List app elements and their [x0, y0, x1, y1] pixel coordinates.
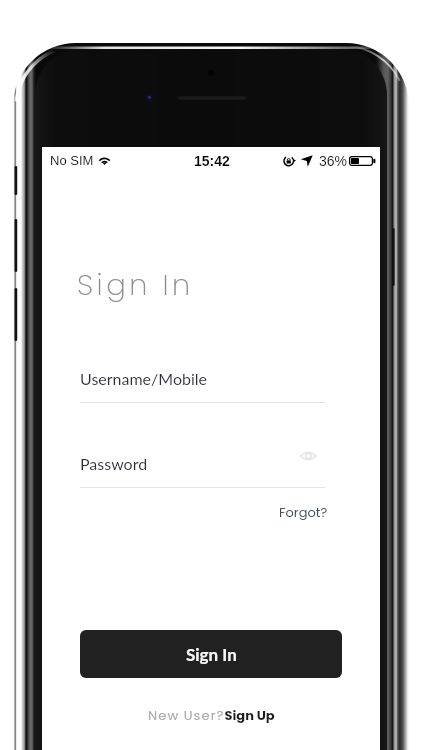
staticText: Sign In	[186, 644, 237, 664]
staticText: 36%	[319, 153, 348, 169]
staticText: New User?Sign Up	[148, 706, 275, 724]
staticText: Forgot?	[279, 503, 328, 521]
button[interactable]: Show password	[293, 441, 323, 471]
staticText: Sign In	[77, 265, 194, 306]
staticText: Password	[80, 454, 148, 473]
button[interactable]: Sign In	[80, 630, 342, 678]
staticText: No SIM	[50, 153, 94, 168]
staticText: 15:42	[194, 153, 230, 169]
button[interactable]: Forgot?	[279, 503, 328, 521]
staticText: Username/Mobile	[80, 369, 208, 388]
button[interactable]: New User?Sign Up	[138, 701, 285, 729]
